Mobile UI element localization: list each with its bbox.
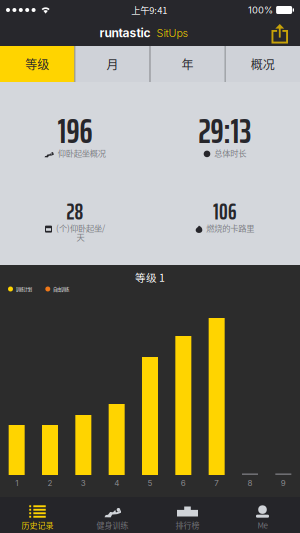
staticText: 106	[213, 194, 237, 229]
staticText: 天	[76, 231, 84, 243]
staticText: 28	[66, 194, 83, 229]
staticText: 训练计划	[16, 286, 32, 292]
staticText: 9	[281, 478, 286, 488]
staticText: 历史记录	[21, 519, 53, 531]
staticText: 仰卧起坐概况	[58, 147, 106, 159]
staticText: 3	[81, 478, 86, 488]
staticText: 月	[106, 55, 118, 73]
staticText: 196	[57, 104, 92, 158]
staticText: 概况	[251, 55, 275, 73]
button[interactable]: 年	[150, 46, 225, 82]
staticText: 7	[214, 478, 219, 488]
staticText: SitUps	[156, 26, 188, 39]
staticText: Me	[257, 519, 267, 531]
staticText: 排行榜	[175, 519, 199, 531]
staticText: 等级	[25, 55, 49, 73]
button[interactable]: 月	[75, 46, 150, 82]
button[interactable]: 等级	[0, 46, 74, 82]
staticText: 2	[47, 478, 52, 488]
staticText: 健身训练	[96, 519, 128, 531]
staticText: 上午9:41	[131, 3, 167, 17]
button[interactable]: Me	[225, 497, 300, 533]
staticText: 4	[114, 478, 119, 488]
button[interactable]: 概况	[225, 46, 300, 82]
staticText: (个)仰卧起坐/	[56, 222, 105, 234]
staticText: 等级 1	[135, 269, 165, 285]
staticText: 6	[181, 478, 186, 488]
staticText: 5	[147, 478, 152, 488]
staticText: 100%	[248, 4, 273, 16]
staticText: 自由训练	[53, 286, 69, 292]
staticText: 年	[182, 55, 194, 73]
staticText: 总体时长	[214, 147, 246, 159]
button[interactable]: 历史记录	[0, 497, 75, 533]
staticText: 29:13	[198, 104, 251, 158]
staticText: 燃烧的卡路里	[206, 222, 254, 234]
staticText: 8	[247, 478, 252, 488]
button[interactable]: 健身训练	[75, 497, 150, 533]
staticText: runtastic	[99, 26, 150, 40]
button[interactable]: 排行榜	[150, 497, 225, 533]
button[interactable]: Share	[270, 22, 300, 44]
staticText: 1	[15, 478, 18, 488]
